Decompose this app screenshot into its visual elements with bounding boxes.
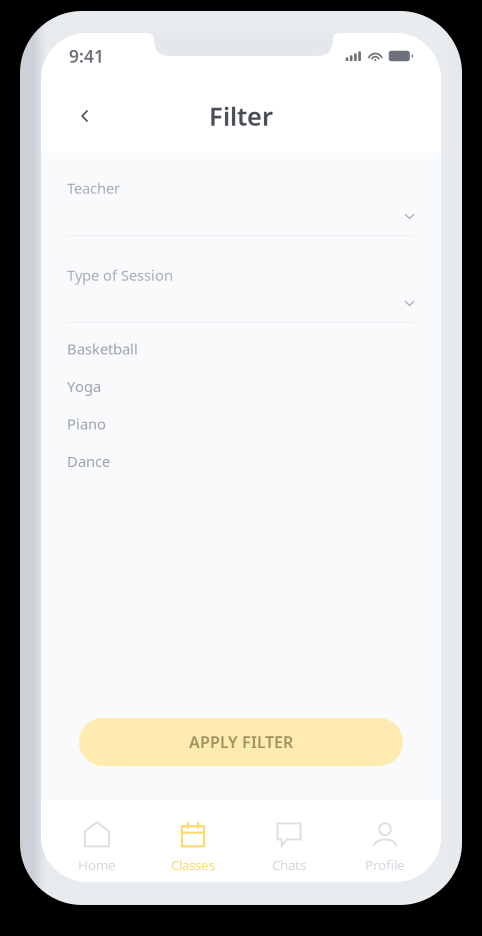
button[interactable]: Piano — [67, 405, 415, 442]
staticText: Classes — [171, 856, 215, 874]
staticText: Profile — [365, 856, 405, 874]
button[interactable]: Home — [49, 821, 145, 874]
staticText: Filter — [209, 99, 273, 133]
button[interactable]: Chats — [241, 821, 337, 874]
button[interactable]: Type of Session — [67, 267, 415, 323]
staticText: Yoga — [67, 376, 101, 396]
button[interactable]: Dance — [67, 442, 415, 480]
button[interactable]: Profile — [337, 821, 433, 874]
button[interactable]: Classes — [145, 821, 241, 874]
staticText: Piano — [67, 414, 106, 433]
staticText: Basketball — [67, 339, 138, 358]
staticText: Chats — [272, 856, 306, 874]
button[interactable]: APPLY FILTER — [79, 718, 403, 766]
staticText: Type of Session — [67, 265, 173, 285]
button[interactable]: Yoga — [67, 367, 415, 405]
button[interactable]: Basketball — [67, 330, 415, 367]
button[interactable]: Back — [63, 94, 107, 138]
staticText: 9:41 — [69, 44, 104, 67]
button[interactable]: Teacher — [67, 180, 415, 236]
staticText: Dance — [67, 451, 110, 471]
staticText: APPLY FILTER — [189, 731, 293, 753]
staticText: Home — [78, 856, 116, 874]
staticText: Teacher — [67, 178, 120, 198]
